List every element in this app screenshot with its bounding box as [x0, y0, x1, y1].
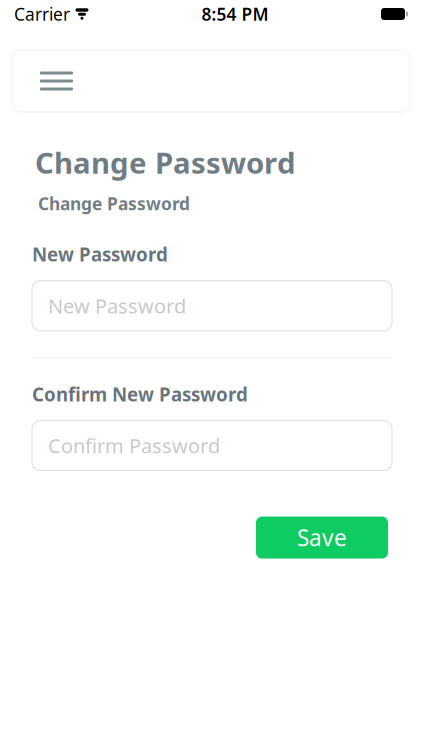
- button[interactable]: Save: [256, 517, 388, 559]
- staticText: Confirm New Password: [32, 382, 248, 407]
- staticText: Save: [297, 522, 347, 553]
- staticText: 8:54 PM: [201, 2, 268, 25]
- button[interactable]: Menu: [12, 50, 410, 112]
- staticText: Change Password: [35, 143, 296, 182]
- staticText: New Password: [48, 292, 186, 319]
- staticText: Change Password: [38, 192, 190, 215]
- staticText: Carrier: [14, 2, 70, 25]
- staticText: Confirm Password: [48, 432, 220, 459]
- button[interactable]: New Password: [32, 281, 392, 331]
- staticText: New Password: [32, 242, 168, 267]
- button[interactable]: Confirm Password: [32, 421, 392, 471]
